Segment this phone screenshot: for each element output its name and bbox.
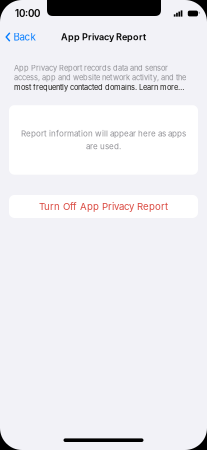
staticText: are used. xyxy=(86,141,121,151)
staticText: most frequently contacted domains. Learn… xyxy=(14,83,184,92)
staticText: access, app and website network activity… xyxy=(14,73,186,82)
staticText: Report information will appear here as a… xyxy=(21,129,186,138)
staticText: App Privacy Report xyxy=(61,31,146,42)
button[interactable]: Back xyxy=(0,27,35,47)
staticText: Turn Off App Privacy Report xyxy=(39,201,168,212)
staticText: Back xyxy=(13,31,35,43)
button[interactable]: Turn Off App Privacy Report xyxy=(9,195,198,218)
staticText: App Privacy Report records data and sens… xyxy=(14,63,168,72)
staticText: 10:00 xyxy=(15,8,40,19)
